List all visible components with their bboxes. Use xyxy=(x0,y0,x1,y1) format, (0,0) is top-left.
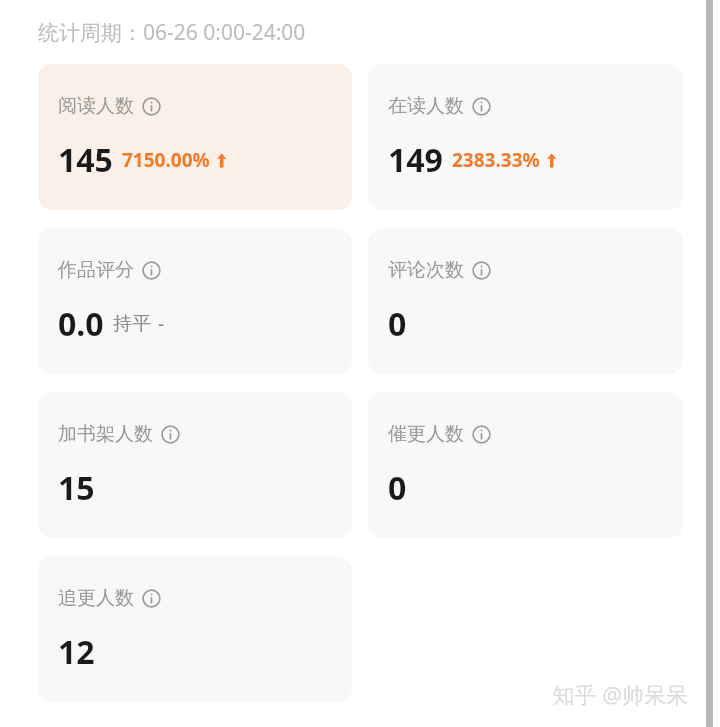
staticText: 15 xyxy=(58,466,95,510)
staticText: 0 xyxy=(388,466,407,510)
staticText: 作品评分 xyxy=(58,258,134,282)
staticText: - xyxy=(158,311,165,337)
button[interactable]: 催更人数 xyxy=(368,392,683,538)
staticText: 145 xyxy=(58,138,113,182)
staticText: 149 xyxy=(388,138,443,182)
staticText: 0 xyxy=(388,302,407,346)
staticText: 催更人数 xyxy=(388,422,464,446)
staticText: 7150.00% xyxy=(122,147,210,173)
staticText: 加书架人数 xyxy=(58,422,153,446)
button[interactable]: Info xyxy=(472,261,491,280)
staticText: 知乎 @帅呆呆 xyxy=(552,679,688,709)
button[interactable]: Info xyxy=(142,261,161,280)
button[interactable]: Info xyxy=(472,97,491,116)
staticText: 持平 xyxy=(113,312,151,336)
button[interactable]: Info xyxy=(142,589,161,608)
button[interactable]: 在读人数 xyxy=(368,64,683,210)
button[interactable]: 加书架人数 xyxy=(38,392,352,538)
staticText: 评论次数 xyxy=(388,258,464,282)
button[interactable]: 作品评分 xyxy=(38,228,352,374)
button[interactable]: 追更人数 xyxy=(38,556,352,702)
button[interactable]: Info xyxy=(472,425,491,444)
staticText: 阅读人数 xyxy=(58,94,134,118)
staticText: 追更人数 xyxy=(58,586,134,610)
staticText: 在读人数 xyxy=(388,94,464,118)
staticText: 0.0 xyxy=(58,302,104,346)
staticText: 12 xyxy=(58,630,95,674)
staticText: 统计周期：06-26 0:00-24:00 xyxy=(38,18,306,47)
button[interactable]: Info xyxy=(161,425,180,444)
button[interactable]: Info xyxy=(142,97,161,116)
staticText: 2383.33% xyxy=(452,147,540,173)
button[interactable]: 阅读人数 xyxy=(38,64,352,210)
button[interactable]: 评论次数 xyxy=(368,228,683,374)
